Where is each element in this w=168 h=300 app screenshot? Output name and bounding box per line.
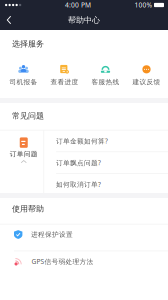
staticText: 订单问题 [10,150,38,158]
staticText: 4:00 PM [65,1,91,9]
button[interactable]: 订单问题 [0,130,43,195]
staticText: 使用帮助 [12,204,44,214]
button[interactable]: 订单飘点问题? [44,152,168,174]
button[interactable]: GPS信号弱处理方法 [0,251,168,278]
staticText: 查看进度 [50,78,78,86]
staticText: 选择服务 [12,39,44,49]
staticText: 订单飘点问题? [56,158,101,167]
staticText: 订单金额如何算? [56,136,108,145]
staticText: 常见问题 [12,111,44,121]
staticText: GPS信号弱处理方法 [31,257,93,266]
staticText: 建议反馈 [132,78,160,86]
button[interactable]: 司机报备 [3,65,44,86]
button[interactable]: 如何取消订单? [44,174,168,195]
button[interactable]: 客服热线 [85,65,126,86]
button[interactable]: 建议反馈 [126,65,167,86]
staticText: 100% [134,1,152,9]
staticText: 帮助中心 [68,15,100,25]
button[interactable]: 进程保护设置 [0,224,168,251]
button[interactable]: 订单金额如何算? [44,130,168,152]
button[interactable]: 返回 [0,10,18,30]
staticText: 进程保护设置 [31,230,73,239]
staticText: 客服热线 [91,78,119,86]
button[interactable]: 查看进度 [44,65,85,86]
staticText: 如何取消订单? [56,180,101,189]
staticText: 司机报备 [9,78,37,86]
